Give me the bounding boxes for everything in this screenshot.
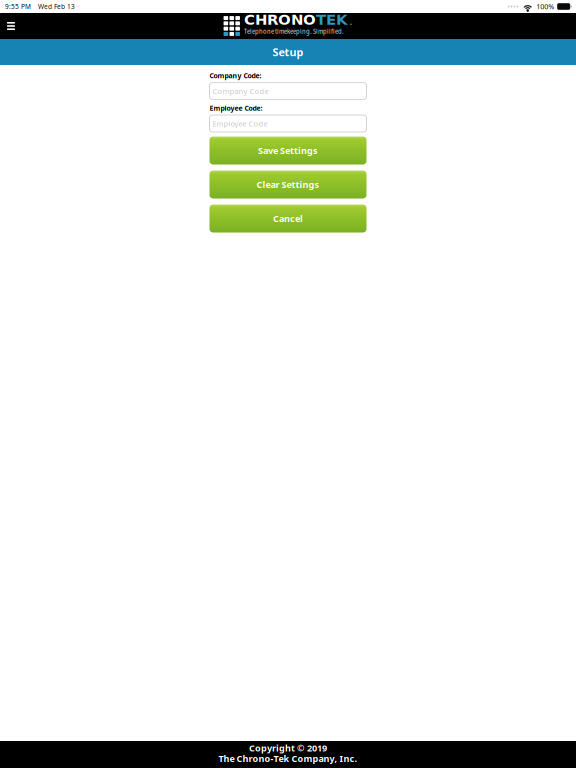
staticText: Telephone timekeeping. Simplified. <box>244 26 344 36</box>
staticText: Company Code <box>212 86 268 96</box>
staticText: 100% <box>536 2 554 11</box>
staticText: Clear Settings <box>256 178 319 191</box>
button[interactable]: Menu <box>0 13 22 39</box>
staticText: Employee Code: <box>209 103 262 113</box>
staticText: Wed Feb 13 <box>38 2 75 11</box>
staticText: 9:55 PM <box>5 2 31 11</box>
staticText: Employee Code <box>212 118 267 129</box>
staticText: CHRONO <box>244 11 316 28</box>
staticText: Company Code: <box>209 71 261 80</box>
staticText: The Chrono-Tek Company, Inc. <box>218 752 357 765</box>
staticText: Copyright © 2019 <box>249 742 327 754</box>
staticText: Cancel <box>273 212 303 225</box>
staticText: Setup <box>272 45 303 59</box>
button[interactable]: Cancel <box>209 204 366 232</box>
staticText: Save Settings <box>258 144 318 157</box>
button[interactable]: Save Settings <box>209 136 366 164</box>
button[interactable]: Clear Settings <box>209 170 366 198</box>
staticText: TEK <box>316 11 348 28</box>
staticText: . <box>349 18 352 27</box>
button[interactable]: Employee Code <box>209 115 366 132</box>
button[interactable]: Company Code <box>209 82 366 99</box>
